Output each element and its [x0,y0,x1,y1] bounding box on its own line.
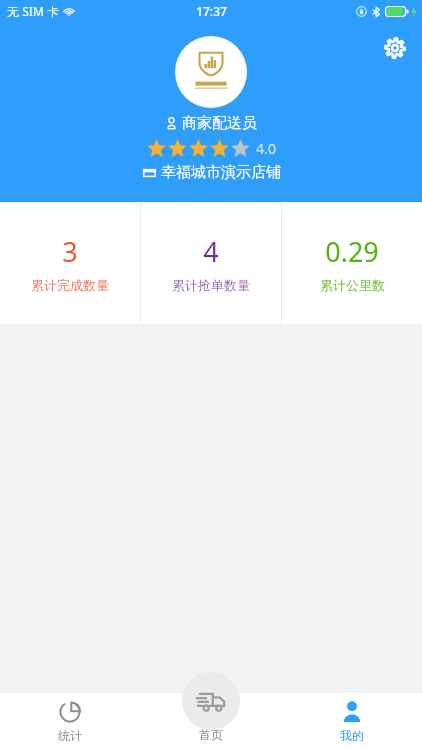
staticText: 0.29 [325,233,379,270]
button[interactable]: Settings [377,30,413,66]
staticText: 幸福城市演示店铺 [161,163,281,182]
staticText: 商家配送员 [182,114,257,133]
staticText: 3 [62,233,78,270]
button[interactable]: 首页 [140,693,281,750]
button[interactable]: 3 [0,202,140,324]
button[interactable]: 首页 Home delivery [182,672,240,730]
button[interactable]: 4 [141,202,281,324]
staticText: 累计完成数量 [31,277,109,293]
staticText: 4 [203,233,219,270]
staticText: 累计抢单数量 [172,277,250,293]
staticText: 无 SIM 卡 [7,3,59,19]
button[interactable]: 0.29 [282,202,422,324]
staticText: 累计公里数 [320,277,385,293]
staticText: 我的 [340,728,364,743]
staticText: 首页 [199,727,223,742]
staticText: 17:37 [196,3,227,19]
staticText: 统计 [58,728,82,743]
button[interactable]: Avatar [175,36,247,108]
staticText: 4.0 [256,139,276,158]
button[interactable]: 统计 [0,693,140,750]
button[interactable]: 我的 [281,693,422,750]
